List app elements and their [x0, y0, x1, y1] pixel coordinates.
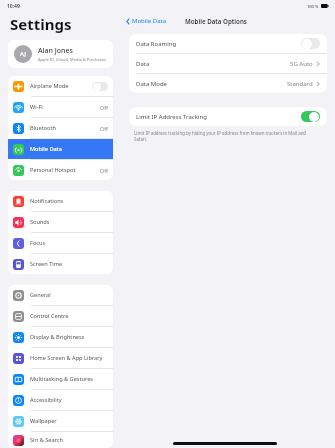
staticText: Apple ID, iCloud, Media & Purchases: [38, 57, 106, 62]
staticText: Data: [136, 60, 150, 68]
staticText: Screen Time: [30, 260, 63, 268]
staticText: Data Roaming: [136, 40, 177, 48]
button[interactable]: Wi-Fi: [8, 97, 113, 117]
button[interactable]: Siri & Search: [8, 432, 113, 448]
staticText: Mobile Data: [30, 145, 62, 153]
button[interactable]: Data Mode: [129, 74, 327, 93]
button[interactable]: Mobile Data: [8, 139, 113, 159]
button[interactable]: Display & Brightness: [8, 327, 113, 347]
button[interactable]: Accessibility: [8, 390, 113, 410]
staticText: Personal Hotspot: [30, 166, 76, 174]
staticText: 5G Auto: [290, 60, 313, 68]
staticText: Home Screen & App Library: [30, 354, 103, 362]
staticText: Off: [100, 167, 108, 174]
staticText: Accessibility: [30, 396, 62, 404]
staticText: Airplane Mode: [30, 82, 69, 90]
button[interactable]: AJ: [8, 40, 113, 68]
staticText: Multitasking & Gestures: [30, 375, 94, 383]
staticText: Standard: [287, 80, 313, 88]
button[interactable]: Switch off: [92, 82, 108, 91]
button[interactable]: Bluetooth: [8, 118, 113, 138]
staticText: Focus: [30, 239, 46, 247]
staticText: Off: [100, 104, 108, 111]
staticText: Mobile Data: [132, 17, 167, 25]
staticText: Control Centre: [30, 312, 69, 320]
staticText: 100 %: [307, 4, 319, 9]
button[interactable]: Sounds: [8, 212, 113, 232]
button[interactable]: Focus: [8, 233, 113, 253]
button[interactable]: Switch on: [301, 111, 320, 122]
button[interactable]: Screen Time: [8, 254, 113, 274]
button[interactable]: Multitasking & Gestures: [8, 369, 113, 389]
staticText: Off: [100, 125, 108, 132]
staticText: Notifications: [30, 197, 64, 205]
button[interactable]: Switch off: [301, 38, 320, 49]
button[interactable]: Personal Hotspot: [8, 160, 113, 180]
button[interactable]: Mobile Data: [124, 15, 169, 27]
staticText: Wallpaper: [30, 417, 57, 425]
button[interactable]: Control Centre: [8, 306, 113, 326]
button[interactable]: Limit IP Address Tracking: [129, 107, 327, 126]
staticText: Limit IP Address Tracking: [136, 113, 207, 121]
staticText: Mobile Data Options: [185, 17, 247, 25]
staticText: Settings: [10, 14, 72, 34]
button[interactable]: Data: [129, 54, 327, 73]
button[interactable]: General: [8, 285, 113, 305]
button[interactable]: Home Screen & App Library: [8, 348, 113, 368]
button[interactable]: Airplane Mode: [8, 76, 113, 96]
staticText: Limit IP address tracking by hiding your…: [134, 130, 313, 142]
staticText: AJ: [20, 50, 26, 58]
staticText: Display & Brightness: [30, 333, 85, 341]
staticText: Data Mode: [136, 80, 167, 88]
button[interactable]: Notifications: [8, 191, 113, 211]
staticText: General: [30, 291, 51, 299]
staticText: Bluetooth: [30, 124, 56, 132]
button[interactable]: Data Roaming: [129, 34, 327, 53]
staticText: Sounds: [30, 218, 50, 226]
button[interactable]: Wallpaper: [8, 411, 113, 431]
staticText: Wi-Fi: [30, 103, 43, 111]
staticText: Siri & Search: [30, 436, 63, 444]
staticText: Alan Jones: [38, 46, 73, 56]
staticText: 10:49: [7, 3, 20, 10]
